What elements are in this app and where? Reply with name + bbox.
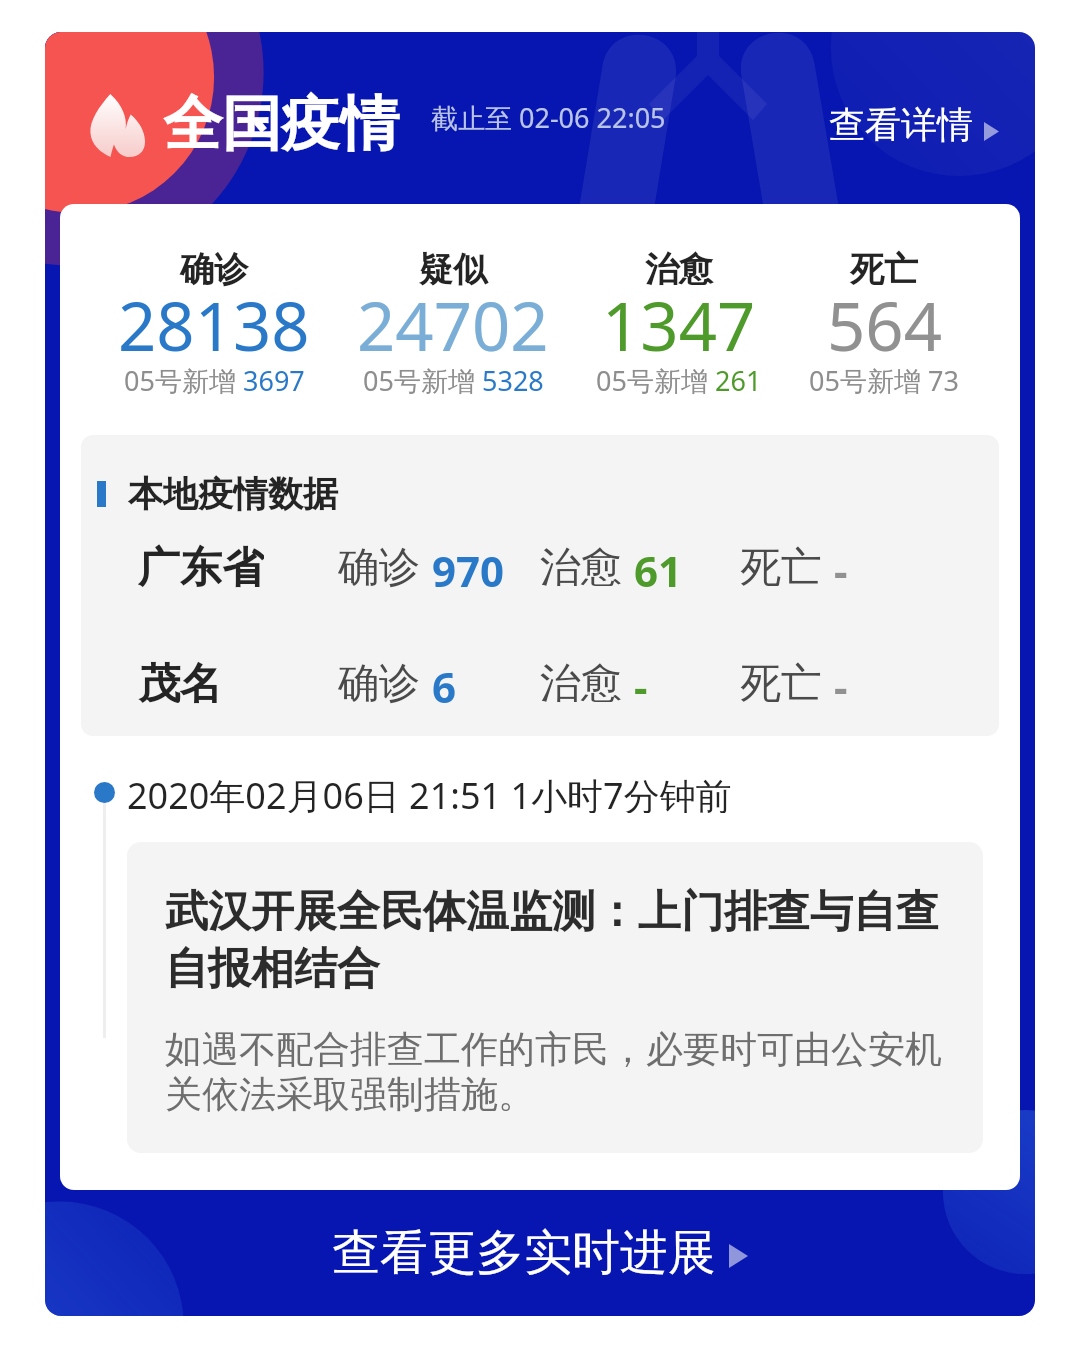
staticText: - <box>834 658 848 708</box>
staticText: 武汉开展全民体温监测：上门排查与自查自报相结合 <box>165 883 945 997</box>
staticText: 查看详情 <box>829 102 973 147</box>
staticText: 28138 <box>118 298 310 366</box>
staticText: 治愈 <box>645 248 713 298</box>
staticText: 05号新增 <box>363 366 482 398</box>
staticText: 05号新增 <box>124 366 243 398</box>
staticText: 564 <box>827 298 942 366</box>
button[interactable]: 查看详情 <box>829 102 999 147</box>
staticText: 24702 <box>357 298 549 366</box>
staticText: 疑似 <box>419 248 487 298</box>
staticText: 本地疫情数据 <box>128 472 338 516</box>
staticText: 如遇不配合排查工作的市民，必要时可由公安机关依法采取强制措施。 <box>165 1028 945 1118</box>
staticText: - <box>834 542 848 592</box>
staticText: 2020年02月06日 21:51 1小时7分钟前 <box>127 771 732 813</box>
staticText: 1347 <box>602 298 756 366</box>
staticText: 治愈 <box>540 658 622 708</box>
staticText: 查看更多实时进展 <box>332 1223 716 1283</box>
staticText: 73 <box>928 366 959 398</box>
staticText: 261 <box>715 366 762 398</box>
staticText: 05号新增 <box>809 366 928 398</box>
button[interactable]: 查看更多实时进展 <box>45 1190 1035 1316</box>
staticText: 970 <box>432 542 505 592</box>
staticText: 3697 <box>243 366 305 398</box>
button[interactable]: 武汉开展全民体温监测：上门排查与自查自报相结合 <box>127 842 983 1153</box>
staticText: 确诊 <box>338 658 420 708</box>
staticText: 死亡 <box>740 542 822 592</box>
staticText: 全国疫情 <box>163 87 399 161</box>
button[interactable]: 茂名 <box>81 658 999 708</box>
staticText: 61 <box>634 542 683 592</box>
staticText: 茂名 <box>138 658 222 708</box>
staticText: - <box>634 658 648 708</box>
button[interactable]: 广东省 <box>81 542 999 592</box>
staticText: 确诊 <box>338 542 420 592</box>
staticText: 5328 <box>482 366 544 398</box>
staticText: 6 <box>432 658 457 708</box>
staticText: 死亡 <box>850 248 918 298</box>
staticText: 截止至 02-06 22:05 <box>431 99 666 136</box>
staticText: 确诊 <box>180 248 248 298</box>
staticText: 05号新增 <box>596 366 715 398</box>
staticText: 治愈 <box>540 542 622 592</box>
staticText: 死亡 <box>740 658 822 708</box>
staticText: 广东省 <box>138 542 264 592</box>
